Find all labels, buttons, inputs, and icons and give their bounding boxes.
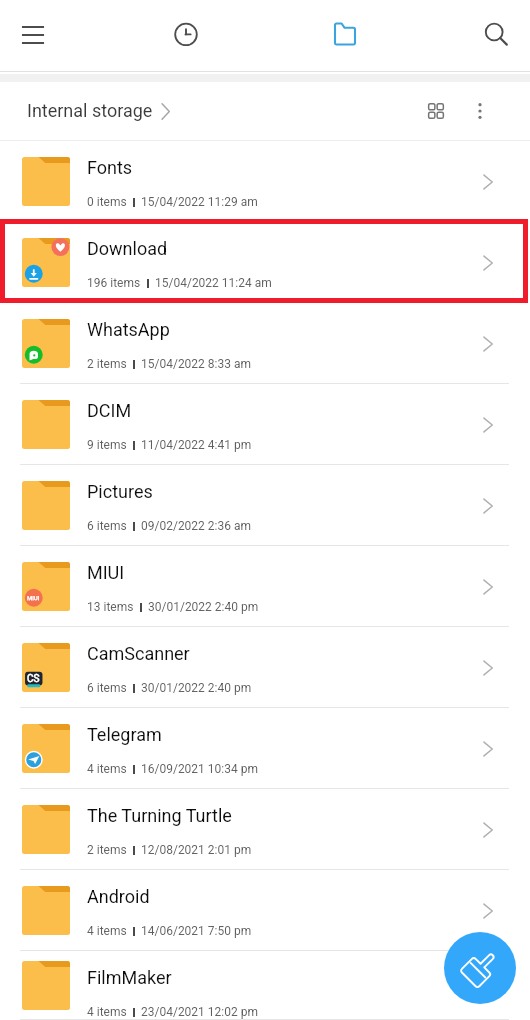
button[interactable]: CS xyxy=(0,627,530,708)
staticText: 2 items xyxy=(87,357,127,371)
button[interactable]: Recent files xyxy=(157,0,214,70)
staticText: WhatsApp xyxy=(87,319,170,340)
staticText: Android xyxy=(87,886,150,907)
staticText: 4 items xyxy=(87,924,127,938)
staticText: Telegram xyxy=(87,724,162,745)
staticText: CamScanner xyxy=(87,643,190,664)
staticText: 15/04/2022 11:29 am xyxy=(141,195,258,209)
staticText: 9 items xyxy=(87,438,127,452)
staticText: 196 items xyxy=(87,276,141,290)
staticText: 30/01/2022 2:40 pm xyxy=(141,681,252,695)
staticText: 4 items xyxy=(87,1005,127,1019)
staticText: 6 items xyxy=(87,681,127,695)
button[interactable]: Menu xyxy=(4,0,61,70)
staticText: 11/04/2022 4:41 pm xyxy=(141,438,252,452)
button[interactable]: Android xyxy=(0,870,530,951)
button[interactable]: Fonts xyxy=(0,141,530,222)
staticText: DCIM xyxy=(87,400,132,421)
button[interactable]: More options xyxy=(456,87,504,135)
staticText: FilmMaker xyxy=(87,967,172,988)
staticText: MIUI xyxy=(87,562,125,583)
staticText: 6 items xyxy=(87,519,127,533)
button[interactable]: Search xyxy=(466,0,523,70)
button[interactable]: FilmMaker xyxy=(0,951,530,1020)
staticText: 30/01/2022 2:40 pm xyxy=(148,600,259,614)
staticText: 4 items xyxy=(87,762,127,776)
staticText: 0 items xyxy=(87,195,127,209)
staticText: 14/06/2021 7:50 pm xyxy=(141,924,252,938)
staticText: Internal storage xyxy=(27,100,153,121)
staticText: 15/04/2022 11:24 am xyxy=(155,276,272,290)
staticText: 13 items xyxy=(87,600,134,614)
staticText: Pictures xyxy=(87,481,153,502)
button[interactable]: Files xyxy=(316,0,373,70)
button[interactable]: Pictures xyxy=(0,465,530,546)
staticText: 09/02/2022 2:36 am xyxy=(141,519,251,533)
staticText: 2 items xyxy=(87,843,127,857)
button[interactable]: The Turning Turtle xyxy=(0,789,530,870)
staticText: 16/09/2021 10:34 pm xyxy=(141,762,258,776)
staticText: MIUI xyxy=(27,594,40,601)
button[interactable]: Telegram xyxy=(0,708,530,789)
button[interactable]: Grid view xyxy=(412,87,460,135)
button[interactable]: WhatsApp xyxy=(0,303,530,384)
staticText: 15/04/2022 8:33 am xyxy=(141,357,251,371)
button[interactable]: Clean up storage xyxy=(444,932,516,1004)
staticText: 23/04/2021 12:02 pm xyxy=(141,1005,258,1019)
staticText: Download xyxy=(87,238,168,259)
staticText: CS xyxy=(27,673,40,685)
staticText: 12/08/2021 2:01 pm xyxy=(141,843,252,857)
button[interactable]: Internal storage xyxy=(27,100,175,121)
button[interactable]: MIUI xyxy=(0,546,530,627)
staticText: Fonts xyxy=(87,157,133,178)
staticText: The Turning Turtle xyxy=(87,805,232,826)
button[interactable]: Download xyxy=(0,222,530,303)
button[interactable]: DCIM xyxy=(0,384,530,465)
